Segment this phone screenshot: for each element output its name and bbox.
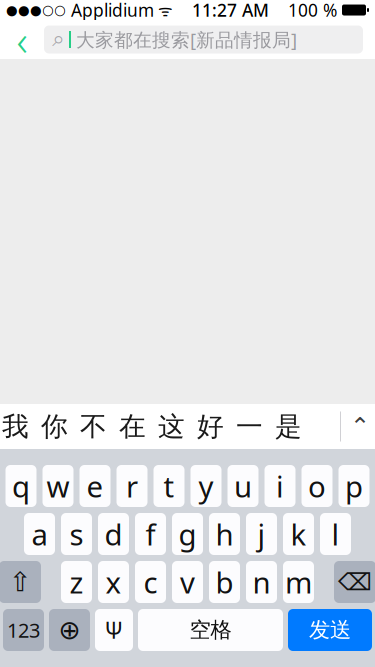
button[interactable]: g xyxy=(172,513,203,555)
button[interactable]: 我 xyxy=(0,404,35,449)
button[interactable]: s xyxy=(61,513,92,555)
staticText: 不 xyxy=(80,410,107,443)
staticText: w xyxy=(46,466,69,505)
button[interactable]: 你 xyxy=(35,404,74,449)
button[interactable]: Back xyxy=(0,20,44,59)
staticText: l xyxy=(331,514,339,553)
staticText: ⌕ xyxy=(52,28,65,50)
button[interactable]: 一 xyxy=(230,404,269,449)
staticText: ‹ xyxy=(16,11,27,68)
staticText: s xyxy=(69,514,83,553)
staticText: ⇧ xyxy=(9,567,31,597)
staticText: b xyxy=(215,562,233,601)
button[interactable]: z xyxy=(61,561,92,603)
button[interactable]: b xyxy=(209,561,240,603)
staticText: n xyxy=(252,562,270,601)
staticText: 我 xyxy=(2,410,29,443)
button[interactable]: j xyxy=(246,513,277,555)
button[interactable]: h xyxy=(209,513,240,555)
staticText: Ψ xyxy=(104,615,123,645)
button[interactable]: w xyxy=(42,465,73,507)
staticText: 空格 xyxy=(189,617,231,643)
staticText: a xyxy=(31,514,47,553)
staticText: 大家都在搜索[新品情报局] xyxy=(76,27,297,52)
button[interactable]: l xyxy=(320,513,351,555)
button[interactable]: Show more candidates xyxy=(341,404,375,449)
button[interactable]: Shift xyxy=(0,561,41,603)
button[interactable]: d xyxy=(98,513,129,555)
button[interactable]: m xyxy=(283,561,314,603)
button[interactable]: Dictation xyxy=(95,609,133,651)
button[interactable]: ⌕ xyxy=(44,25,363,53)
staticText: 100 % xyxy=(288,0,337,21)
staticText: 一 xyxy=(236,410,263,443)
staticText: 11:27 AM xyxy=(192,0,269,21)
button[interactable]: 这 xyxy=(152,404,191,449)
button[interactable]: i xyxy=(264,465,295,507)
staticText: y xyxy=(198,466,213,505)
button[interactable]: 是 xyxy=(269,404,308,449)
button[interactable]: r xyxy=(116,465,147,507)
button[interactable]: a xyxy=(24,513,55,555)
button[interactable]: 好 xyxy=(191,404,230,449)
staticText: k xyxy=(290,514,306,553)
staticText: 在 xyxy=(119,410,146,443)
button[interactable]: 123 xyxy=(3,609,44,651)
staticText: u xyxy=(234,466,252,505)
staticText: v xyxy=(180,562,195,601)
button[interactable]: 空格 xyxy=(138,609,283,651)
button[interactable]: k xyxy=(283,513,314,555)
staticText: ⌫ xyxy=(338,568,372,596)
staticText: Applidium xyxy=(66,0,154,21)
staticText: h xyxy=(215,514,233,553)
staticText: 123 xyxy=(7,617,40,643)
button[interactable]: q xyxy=(5,465,36,507)
staticText: ●●●○○ xyxy=(6,2,66,17)
staticText: 发送 xyxy=(309,617,351,643)
staticText: r xyxy=(126,466,138,505)
button[interactable]: 发送 xyxy=(288,609,372,651)
staticText: ⊕ xyxy=(58,615,80,645)
staticText: g xyxy=(178,514,196,553)
button[interactable]: Next keyboard xyxy=(49,609,90,651)
button[interactable]: u xyxy=(227,465,258,507)
staticText: o xyxy=(308,466,326,505)
staticText: z xyxy=(69,562,83,601)
button[interactable]: c xyxy=(135,561,166,603)
staticText: 你 xyxy=(41,410,68,443)
staticText: 这 xyxy=(158,410,185,443)
staticText: x xyxy=(105,562,121,601)
button[interactable]: 在 xyxy=(113,404,152,449)
staticText: 是 xyxy=(275,410,302,443)
button[interactable]: Delete xyxy=(334,561,375,603)
button[interactable]: y xyxy=(190,465,221,507)
button[interactable]: n xyxy=(246,561,277,603)
staticText: p xyxy=(345,466,363,505)
button[interactable]: o xyxy=(301,465,332,507)
button[interactable]: p xyxy=(338,465,369,507)
button[interactable]: f xyxy=(135,513,166,555)
button[interactable]: v xyxy=(172,561,203,603)
staticText: ⌃ xyxy=(350,413,370,440)
staticText: t xyxy=(163,466,174,505)
staticText: 好 xyxy=(197,410,224,443)
staticText: i xyxy=(276,466,284,505)
staticText: m xyxy=(285,562,312,601)
staticText: q xyxy=(12,466,30,505)
staticText: ᯤ xyxy=(154,0,173,21)
staticText: c xyxy=(143,562,157,601)
staticText: e xyxy=(86,466,103,505)
staticText: d xyxy=(104,514,122,553)
button[interactable]: t xyxy=(153,465,184,507)
button[interactable]: 不 xyxy=(74,404,113,449)
staticText: f xyxy=(145,514,155,553)
staticText: j xyxy=(257,514,265,553)
button[interactable]: e xyxy=(79,465,110,507)
button[interactable]: x xyxy=(98,561,129,603)
